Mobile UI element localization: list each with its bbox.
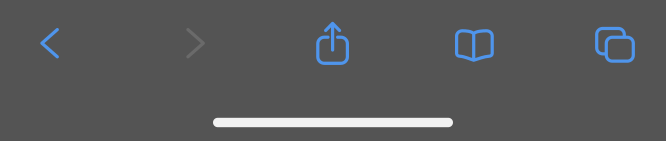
button[interactable]: Tabs	[575, 9, 655, 81]
button[interactable]: Share	[293, 7, 373, 79]
button[interactable]: Back	[10, 7, 90, 79]
button[interactable]: Forward	[156, 7, 236, 79]
button[interactable]: Bookmarks	[434, 9, 514, 81]
